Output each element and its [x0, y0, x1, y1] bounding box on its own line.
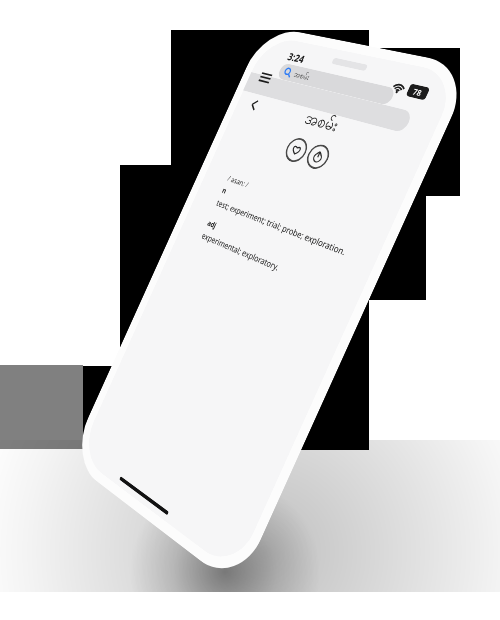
staticText: experimental; exploratory.: [200, 227, 282, 274]
staticText: n: [221, 184, 229, 196]
staticText: / asan: /: [226, 171, 251, 191]
staticText: အစမ်း: [292, 66, 312, 86]
button[interactable]: Favourite: [282, 133, 311, 167]
button[interactable]: Menu: [253, 62, 278, 92]
staticText: အစမ်း: [300, 102, 343, 143]
button[interactable]: Back: [242, 90, 267, 120]
staticText: 3:24: [286, 46, 307, 69]
staticText: test; experiment; trial; probe; explorat…: [215, 189, 348, 263]
staticText: 78: [411, 84, 425, 100]
staticText: adj: [206, 217, 219, 230]
button[interactable]: Share: [303, 139, 333, 174]
button[interactable]: အစမ်း: [276, 42, 396, 125]
